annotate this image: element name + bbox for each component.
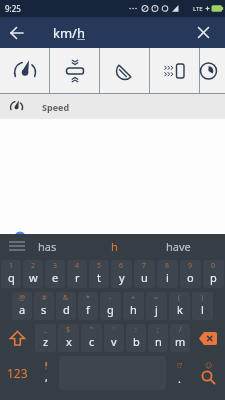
button[interactable] <box>0 17 34 48</box>
button[interactable]: 2 <box>23 260 43 288</box>
button[interactable]: has <box>16 234 78 258</box>
button[interactable] <box>100 48 150 93</box>
staticText: g <box>107 302 114 317</box>
button[interactable] <box>200 48 225 93</box>
staticText: r <box>75 270 80 285</box>
staticText: $ <box>66 325 71 335</box>
button[interactable]: 9 <box>180 260 201 288</box>
staticText: LTE <box>193 5 203 13</box>
staticText: 5 <box>97 261 102 271</box>
staticText: has <box>38 239 57 254</box>
button[interactable]: 1 <box>1 260 21 288</box>
staticText: & <box>63 293 69 303</box>
staticText: @ <box>19 293 26 303</box>
staticText: !? <box>177 361 182 371</box>
button[interactable] <box>186 17 220 48</box>
button[interactable]: ) <box>192 292 213 320</box>
button[interactable]: # <box>34 292 54 320</box>
staticText: 0 <box>211 261 216 271</box>
button[interactable]: ( <box>169 292 190 320</box>
staticText: h <box>130 302 137 317</box>
staticText: f <box>86 302 90 317</box>
staticText: i <box>166 270 169 285</box>
staticText: ) <box>201 293 204 303</box>
staticText: km/h <box>53 24 85 42</box>
staticText: ☺ <box>205 362 213 370</box>
staticText: u <box>141 270 148 285</box>
staticText: d <box>63 302 70 317</box>
button[interactable]: 7 <box>134 260 155 288</box>
button[interactable]: + <box>123 292 144 320</box>
staticText: c <box>89 334 95 349</box>
staticText: e <box>52 270 59 285</box>
button[interactable]: $ <box>58 324 79 352</box>
button[interactable]: = <box>146 292 167 320</box>
button[interactable]: 4 <box>67 260 87 288</box>
staticText: * <box>86 293 90 303</box>
staticText: have <box>166 239 191 254</box>
staticText: p <box>210 270 217 285</box>
button[interactable] <box>2 324 32 352</box>
staticText: h <box>111 239 118 254</box>
staticText: ' <box>113 325 115 335</box>
button[interactable]: & <box>56 292 76 320</box>
staticText: 3 <box>53 261 58 271</box>
button[interactable]: : <box>126 324 146 352</box>
button[interactable]: 3 <box>45 260 65 288</box>
staticText: 9 <box>188 261 193 271</box>
staticText: ; <box>157 325 159 335</box>
staticText: 6 <box>119 261 124 271</box>
staticText: 2 <box>31 261 36 271</box>
button[interactable]: - <box>100 292 121 320</box>
staticText: : <box>135 325 137 335</box>
button[interactable]: " <box>81 324 102 352</box>
staticText: q <box>8 270 15 285</box>
button[interactable]: ☺ <box>191 354 225 392</box>
button[interactable]: have <box>150 234 206 258</box>
button[interactable] <box>50 48 100 93</box>
staticText: y <box>119 270 125 285</box>
staticText: # <box>42 293 47 303</box>
staticText: 1 <box>9 261 14 271</box>
button[interactable]: ; <box>148 324 168 352</box>
button[interactable]: _ <box>35 324 56 352</box>
staticText: ( <box>178 293 181 303</box>
button[interactable]: ' <box>104 324 124 352</box>
staticText: 4 <box>75 261 80 271</box>
button[interactable]: , <box>36 356 55 390</box>
staticText: + <box>131 293 136 303</box>
staticText: - <box>109 293 112 303</box>
button[interactable]: 123 <box>0 354 34 392</box>
button[interactable]: @ <box>12 292 32 320</box>
button[interactable]: * <box>78 292 98 320</box>
staticText: v <box>111 334 117 349</box>
staticText: o <box>187 270 194 285</box>
staticText: w <box>29 270 38 285</box>
button[interactable] <box>193 324 223 352</box>
staticText: 7 <box>142 261 147 271</box>
staticText: Speed <box>42 101 70 113</box>
staticText: x <box>66 334 72 349</box>
staticText: k <box>177 302 183 317</box>
button[interactable] <box>0 48 50 93</box>
staticText: 8 <box>165 261 170 271</box>
button[interactable]: 0 <box>203 260 224 288</box>
button[interactable] <box>150 48 200 93</box>
staticText: a <box>19 302 26 317</box>
button[interactable]: 8 <box>157 260 178 288</box>
staticText: , <box>45 370 48 384</box>
button[interactable]: h <box>78 234 150 258</box>
staticText: . <box>178 371 181 386</box>
staticText: l <box>201 302 204 317</box>
staticText: z <box>43 334 49 349</box>
button[interactable]: / <box>170 324 190 352</box>
staticText: = <box>154 293 159 303</box>
button[interactable]: 5 <box>89 260 109 288</box>
button[interactable]: 6 <box>111 260 132 288</box>
staticText: n <box>155 334 162 349</box>
staticText: j <box>155 302 158 317</box>
button[interactable]: Speed <box>0 94 225 119</box>
button[interactable]: !? <box>170 356 189 390</box>
staticText: 123 <box>7 365 28 381</box>
